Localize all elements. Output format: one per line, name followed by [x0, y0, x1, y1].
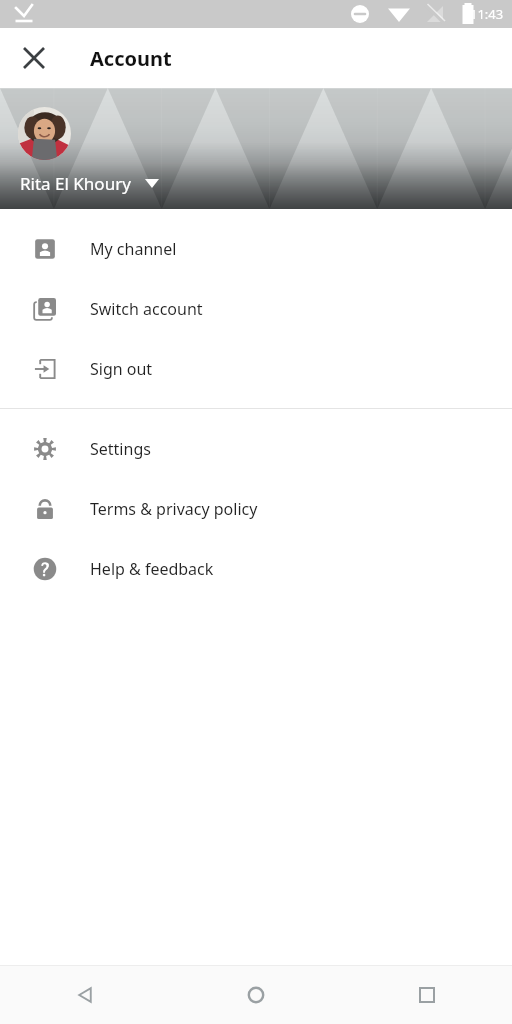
button[interactable]: Close — [10, 34, 58, 82]
button[interactable]: My channel — [0, 219, 512, 279]
button[interactable]: Settings — [0, 419, 512, 479]
button[interactable]: Sign out — [0, 339, 512, 399]
button[interactable]: Rita El Khoury — [14, 170, 165, 197]
staticText: Switch account — [90, 298, 203, 320]
button[interactable]: Back — [0, 966, 170, 1024]
staticText: 11:43 — [470, 5, 504, 23]
staticText: My channel — [90, 238, 177, 260]
button[interactable]: Terms & privacy policy — [0, 479, 512, 539]
button[interactable]: Recent apps — [341, 966, 512, 1024]
staticText: Settings — [90, 438, 151, 460]
staticText: Account — [90, 45, 172, 72]
button[interactable]: Home — [170, 966, 341, 1024]
button[interactable]: Help & feedback — [0, 539, 512, 599]
staticText: Terms & privacy policy — [90, 498, 258, 520]
staticText: Rita El Khoury — [20, 172, 131, 195]
staticText: Sign out — [90, 358, 153, 380]
staticText: Help & feedback — [90, 558, 214, 580]
button[interactable]: Profile photo — [18, 107, 71, 160]
button[interactable]: Switch account — [0, 279, 512, 339]
